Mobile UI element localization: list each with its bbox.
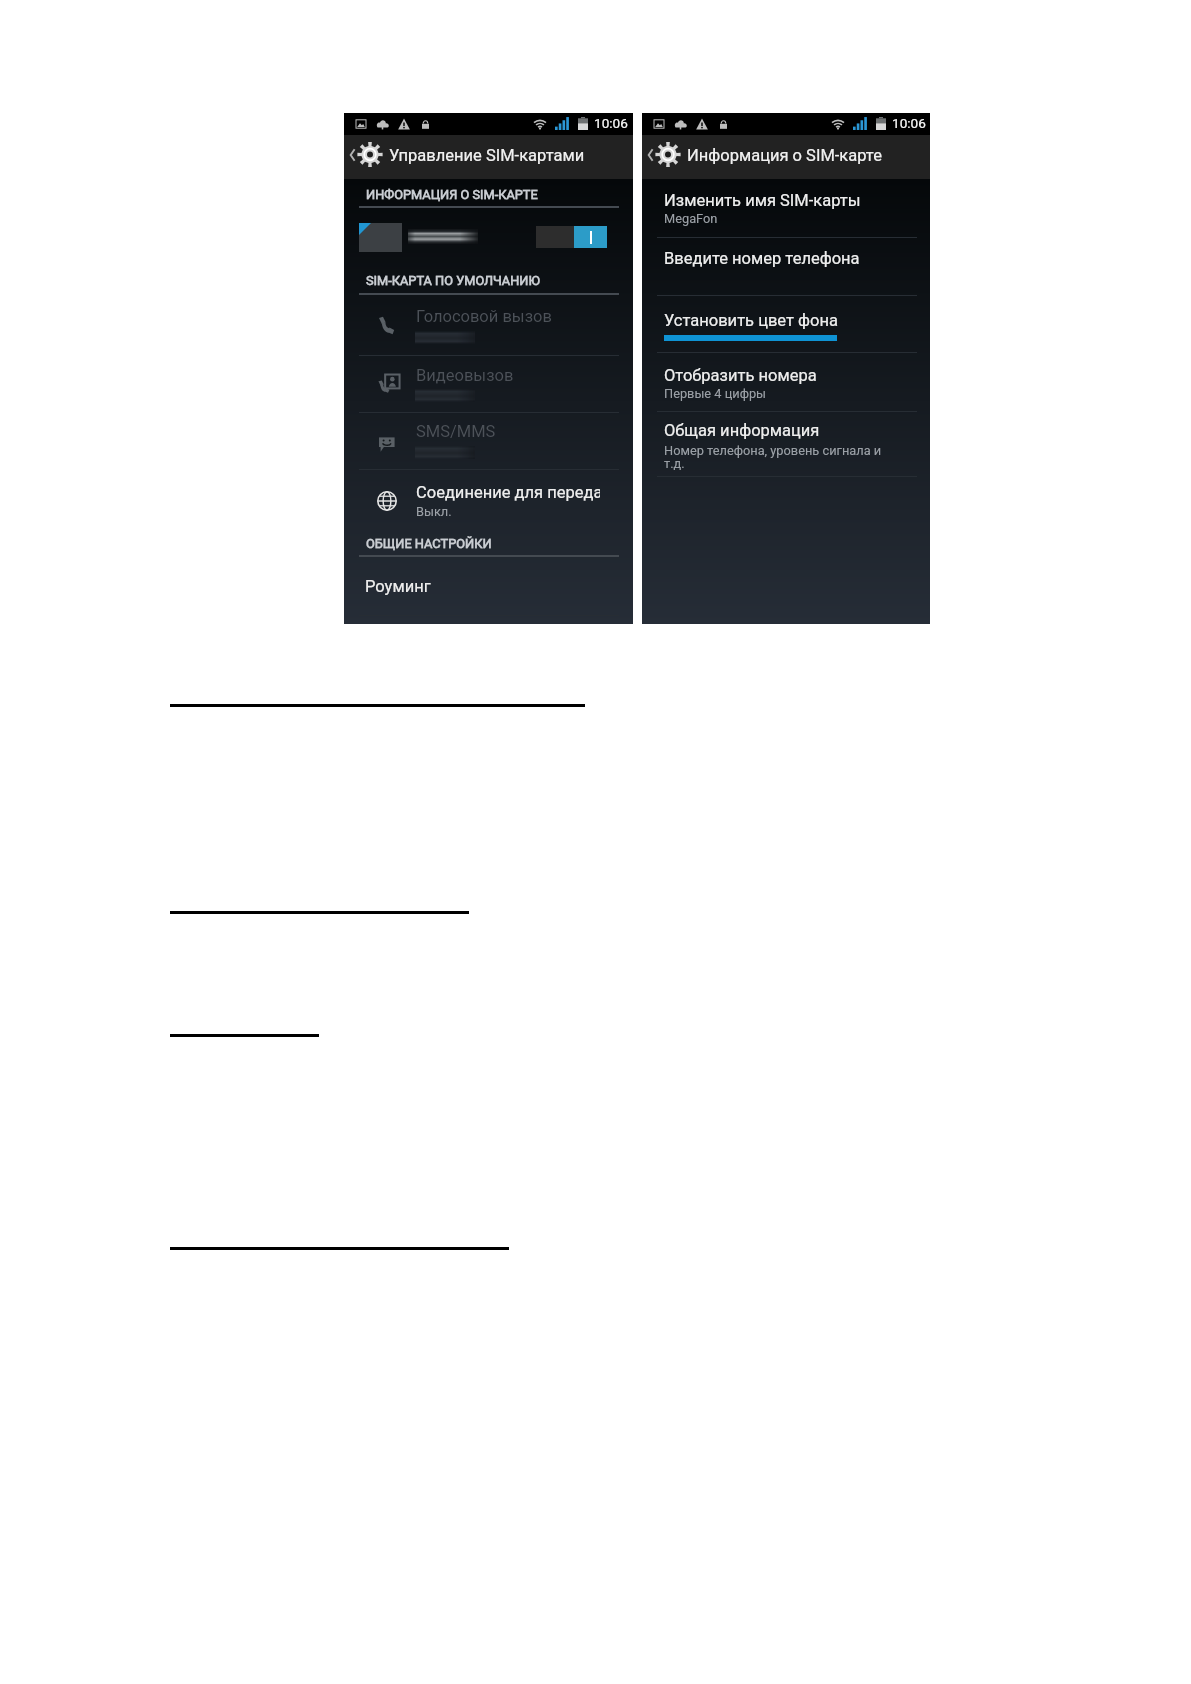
- button[interactable]: Голосовой вызов: [344, 295, 633, 347]
- staticText: Выкл.: [416, 504, 452, 519]
- button[interactable]: Видеовызов: [344, 354, 633, 406]
- button[interactable]: Введите номер телефона: [664, 249, 952, 268]
- staticText: ОБЩИЕ НАСТРОЙКИ: [366, 536, 492, 551]
- staticText: MegaFon: [664, 211, 718, 226]
- button[interactable]: SMS/MMS: [344, 410, 633, 462]
- staticText: Роуминг: [365, 577, 431, 596]
- button[interactable]: Роуминг: [344, 567, 633, 603]
- button[interactable]: Отобразить номера: [664, 366, 952, 385]
- button[interactable]: Изменить имя SIM-карты: [664, 191, 952, 210]
- staticText: SMS/MMS: [416, 422, 496, 441]
- staticText: Видеовызов: [416, 366, 514, 385]
- staticText: Номер телефона, уровень сигнала и: [664, 443, 882, 458]
- staticText: Управление SIM-картами: [389, 146, 585, 165]
- staticText: SIM-КАРТА ПО УМОЛЧАНИЮ: [366, 273, 540, 288]
- staticText: т.д.: [664, 456, 685, 471]
- button[interactable]: Назад: [344, 135, 633, 179]
- staticText: Голосовой вызов: [416, 307, 552, 326]
- button[interactable]: Общая информация: [664, 421, 952, 440]
- staticText: Информация о SIM-карте: [687, 146, 882, 165]
- button[interactable]: Установить цвет фона: [664, 311, 952, 330]
- button[interactable]: Назад: [642, 135, 930, 179]
- button[interactable]: [344, 213, 633, 261]
- staticText: 10:06: [594, 115, 628, 131]
- staticText: ИНФОРМАЦИЯ О SIM-КАРТЕ: [366, 187, 538, 202]
- staticText: Первые 4 цифры: [664, 386, 767, 401]
- button[interactable]: Соединение для передачи данных: [344, 483, 633, 527]
- staticText: Соединение для передачи данных: [416, 483, 600, 502]
- staticText: 10:06: [892, 115, 926, 131]
